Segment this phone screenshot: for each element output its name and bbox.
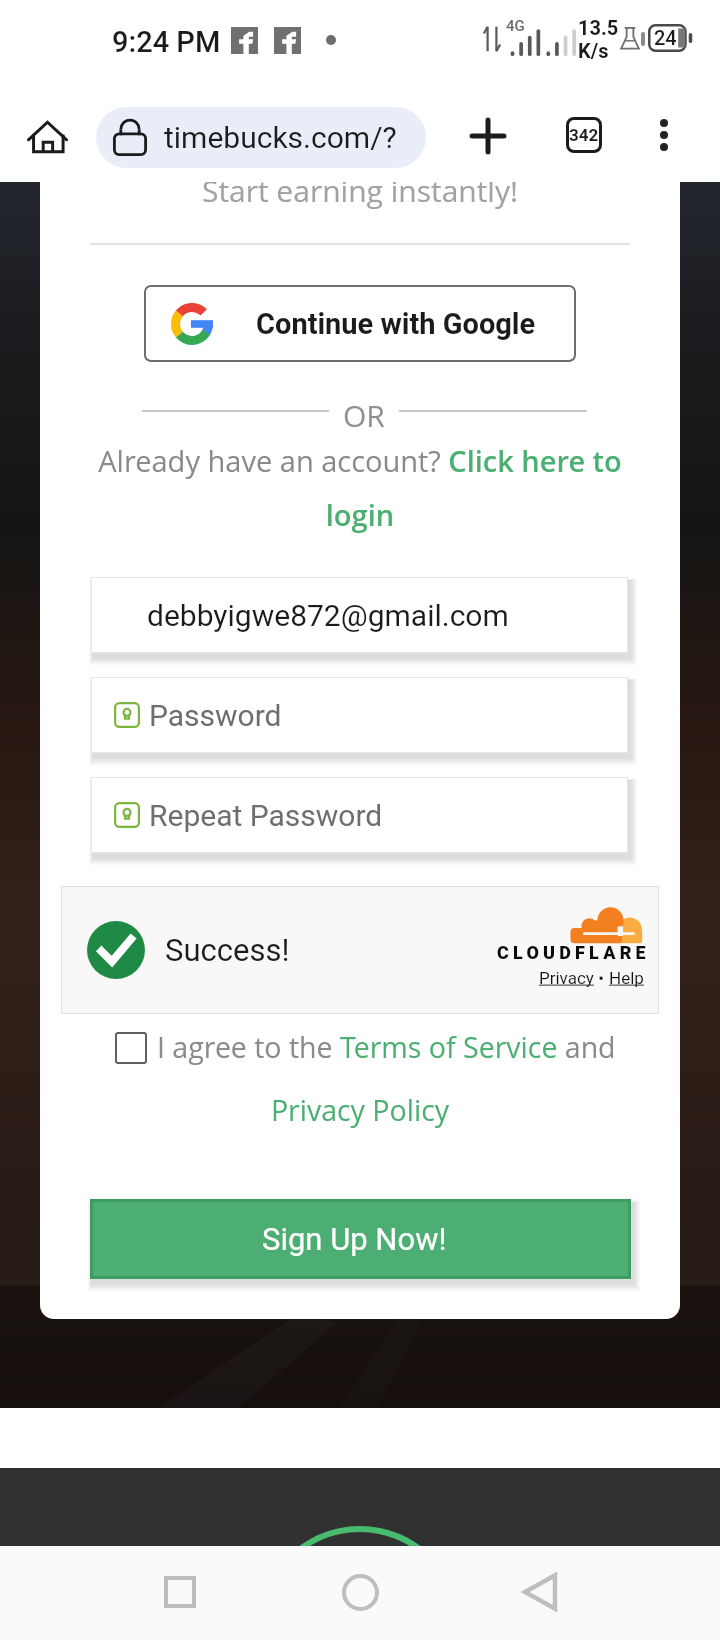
staticText: Repeat Password (149, 798, 383, 833)
button[interactable]: Help (609, 968, 644, 988)
button[interactable]: Tabs (554, 105, 614, 165)
button[interactable]: More options (634, 105, 694, 165)
button[interactable]: Privacy Policy (40, 1091, 680, 1130)
button[interactable]: I agree checkbox (115, 1032, 147, 1064)
button[interactable]: Already have an account? Click here to l… (74, 441, 646, 535)
staticText: K/s (578, 39, 609, 62)
staticText: Continue with Google (256, 307, 536, 341)
staticText: OR (343, 395, 385, 427)
button[interactable]: Back (504, 1556, 576, 1628)
staticText: CLOUDFLARE (497, 942, 650, 963)
staticText: 9:24 PM (112, 25, 221, 59)
button[interactable]: Continue with Google (144, 285, 576, 362)
staticText: Sign Up Now! (262, 1221, 447, 1257)
button[interactable]: Password (91, 677, 628, 753)
staticText: 13.5 (578, 16, 619, 39)
button[interactable]: New tab (458, 106, 518, 166)
button[interactable]: Home (324, 1556, 396, 1628)
button[interactable]: Repeat Password (91, 777, 628, 853)
staticText: debbyigwe872@gmail.com (147, 598, 509, 633)
staticText: 342 (569, 125, 599, 145)
staticText: Success! (165, 932, 290, 968)
staticText: 4G (506, 17, 525, 35)
button[interactable]: timebucks.com/? (96, 107, 426, 168)
staticText: Start earning instantly! (202, 182, 519, 211)
staticText: I agree to the Terms of Service and (157, 1028, 616, 1067)
staticText: timebucks.com/? (164, 120, 397, 155)
staticText: Password (149, 698, 282, 733)
button[interactable]: debbyigwe872@gmail.com (91, 577, 628, 653)
staticText: 24 (654, 26, 677, 49)
staticText: • (594, 968, 609, 988)
button[interactable]: Home (17, 108, 77, 168)
button[interactable]: Recent apps (144, 1556, 216, 1628)
button[interactable]: Sign Up Now! (93, 1202, 628, 1276)
button[interactable]: Privacy (539, 968, 594, 988)
